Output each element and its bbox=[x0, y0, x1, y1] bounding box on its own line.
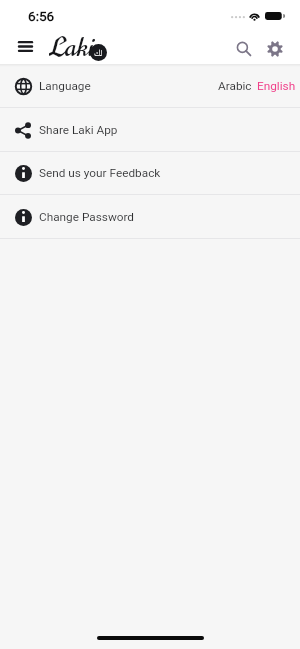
staticText: English bbox=[257, 79, 296, 93]
button[interactable]: Language bbox=[0, 64, 300, 107]
staticText: Send us your Feedback bbox=[39, 166, 161, 180]
button[interactable]: Settings bbox=[260, 34, 289, 63]
button[interactable]: Send us your Feedback bbox=[0, 152, 300, 194]
button[interactable]: Change Password bbox=[0, 195, 300, 238]
staticText: Change Password bbox=[39, 210, 135, 224]
staticText: Laki bbox=[49, 29, 95, 65]
button[interactable]: Search bbox=[230, 35, 257, 62]
button[interactable]: Share Laki App bbox=[0, 108, 300, 151]
button[interactable]: Menu bbox=[11, 32, 39, 60]
staticText: Arabic bbox=[218, 79, 252, 93]
staticText: لك bbox=[94, 47, 103, 59]
staticText: 6:56 bbox=[28, 8, 55, 24]
staticText: Share Laki App bbox=[39, 123, 118, 137]
staticText: Language bbox=[39, 79, 91, 93]
